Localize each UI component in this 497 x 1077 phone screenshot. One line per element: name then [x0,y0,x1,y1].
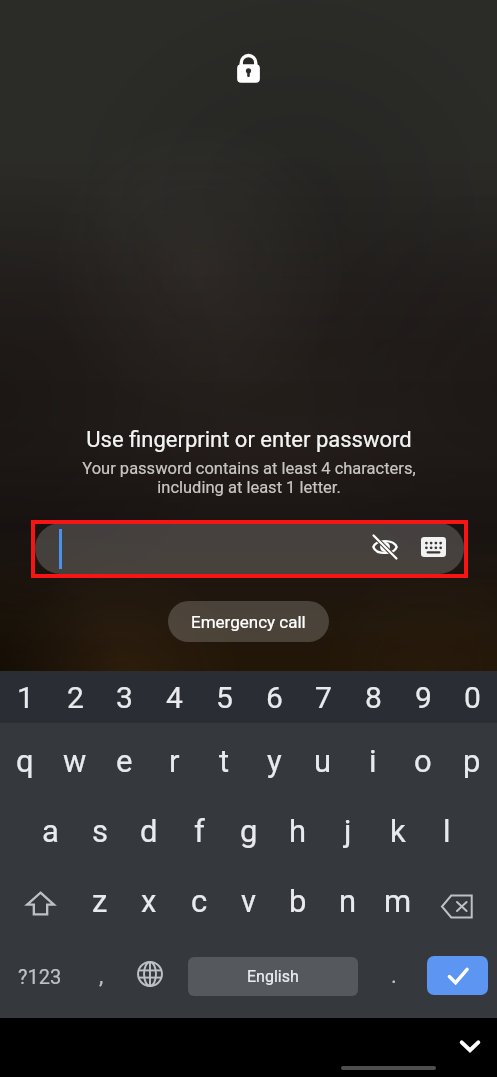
button[interactable]: 8 [348,671,398,723]
staticText: r [169,743,180,779]
button[interactable]: 0 [447,671,497,723]
button[interactable]: Shift [0,867,80,939]
staticText: 5 [216,680,233,715]
staticText: c [191,883,208,919]
button[interactable]: m [373,865,423,937]
button[interactable]: y [249,725,299,797]
staticText: u [314,743,332,779]
button[interactable]: l [422,795,472,867]
button[interactable]: p [447,725,497,797]
button[interactable]: Emergency call [168,601,329,642]
staticText: a [42,813,59,849]
staticText: m [384,883,412,919]
staticText: 1 [17,680,34,715]
button[interactable]: a [25,795,75,867]
staticText: k [390,813,406,849]
staticText: w [63,743,87,779]
staticText: 3 [116,680,133,715]
staticText: g [240,813,258,849]
button[interactable]: g [224,795,274,867]
staticText: t [219,743,230,779]
staticText: English [247,967,299,986]
staticText: Use fingerprint or enter password [86,427,412,453]
button[interactable]: 6 [249,671,299,723]
staticText: x [141,883,157,919]
button[interactable]: d [124,795,174,867]
staticText: l [443,813,451,849]
staticText: b [289,883,307,919]
staticText: 9 [415,680,432,715]
button[interactable]: z [75,865,125,937]
button[interactable]: Enter [427,956,488,995]
button[interactable]: 4 [149,671,199,723]
staticText: p [463,743,481,779]
button[interactable]: q [0,725,50,797]
button[interactable]: 5 [199,671,249,723]
button[interactable]: r [149,725,199,797]
staticText: ?123 [18,965,62,988]
button[interactable]: j [323,795,373,867]
button[interactable]: o [398,725,448,797]
staticText: j [344,813,352,849]
button[interactable]: 9 [398,671,448,723]
staticText: Your password contains at least 4 charac… [82,459,416,497]
button[interactable]: h [273,795,323,867]
button[interactable]: x [124,865,174,937]
button[interactable]: English [188,957,358,996]
button[interactable]: n [323,865,373,937]
button[interactable]: Show password [35,523,464,574]
button[interactable]: w [50,725,100,797]
staticText: v [241,883,257,919]
button[interactable]: , [80,941,122,1011]
button[interactable]: 2 [50,671,100,723]
button[interactable]: Change keyboard language [127,939,173,1009]
button[interactable]: e [99,725,149,797]
button[interactable]: s [75,795,125,867]
staticText: 8 [365,680,382,715]
button[interactable]: t [199,725,249,797]
button[interactable]: 1 [0,671,50,723]
button[interactable]: Hide keyboard [452,1024,488,1060]
staticText: q [16,743,34,779]
button[interactable]: Switch keyboard [421,537,446,557]
staticText: s [92,813,108,849]
staticText: , [99,963,104,989]
button[interactable]: c [174,865,224,937]
button[interactable]: Show password [372,535,398,559]
button[interactable]: ?123 [1,941,79,1011]
staticText: Emergency call [191,612,306,632]
staticText: 0 [464,680,481,715]
button[interactable]: f [174,795,224,867]
button[interactable]: u [298,725,348,797]
staticText: 7 [315,680,332,715]
button[interactable]: i [348,725,398,797]
staticText: n [339,883,357,919]
button[interactable]: Backspace [417,870,497,942]
staticText: y [267,743,282,779]
staticText: 6 [266,680,283,715]
staticText: f [194,813,205,849]
staticText: 4 [166,680,183,715]
button[interactable]: 7 [298,671,348,723]
button[interactable]: 3 [99,671,149,723]
staticText: d [140,813,158,849]
button[interactable]: v [224,865,274,937]
button[interactable]: b [273,865,323,937]
staticText: z [92,883,108,919]
staticText: o [414,743,432,779]
button[interactable]: . [374,941,414,1011]
staticText: 2 [67,680,84,715]
button[interactable]: k [373,795,423,867]
staticText: h [289,813,307,849]
staticText: i [369,743,377,779]
staticText: . [391,963,397,989]
staticText: e [116,743,133,779]
